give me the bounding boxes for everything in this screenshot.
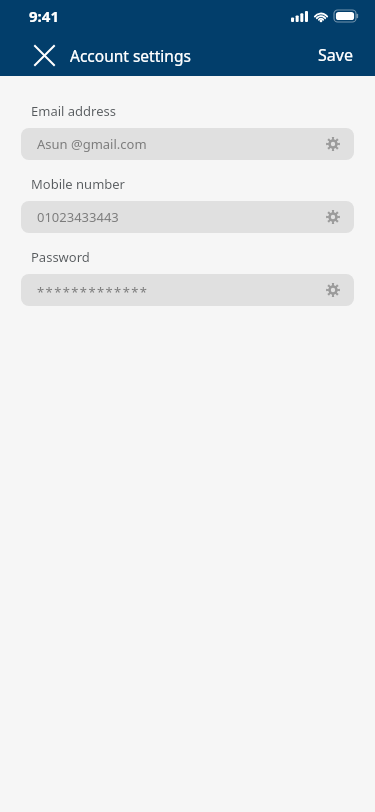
staticText: Account settings	[70, 45, 191, 66]
staticText: *************	[37, 283, 149, 301]
staticText: Save	[318, 44, 353, 66]
button[interactable]: Save	[310, 40, 361, 70]
button[interactable]: Close	[28, 39, 60, 71]
staticText: 9:41	[29, 6, 59, 26]
button[interactable]: *************	[21, 274, 354, 306]
staticText: Email address	[31, 102, 116, 120]
button[interactable]: Asun @gmail.com	[21, 128, 354, 160]
button[interactable]: 01023433443	[21, 201, 354, 233]
button[interactable]: Edit Mobile number settings	[318, 202, 348, 232]
staticText: Asun @gmail.com	[37, 135, 147, 153]
staticText: 01023433443	[37, 208, 119, 226]
staticText: Password	[31, 248, 90, 266]
button[interactable]: Edit Password settings	[318, 275, 348, 305]
button[interactable]: Edit Email address settings	[318, 129, 348, 159]
staticText: Mobile number	[31, 175, 125, 193]
